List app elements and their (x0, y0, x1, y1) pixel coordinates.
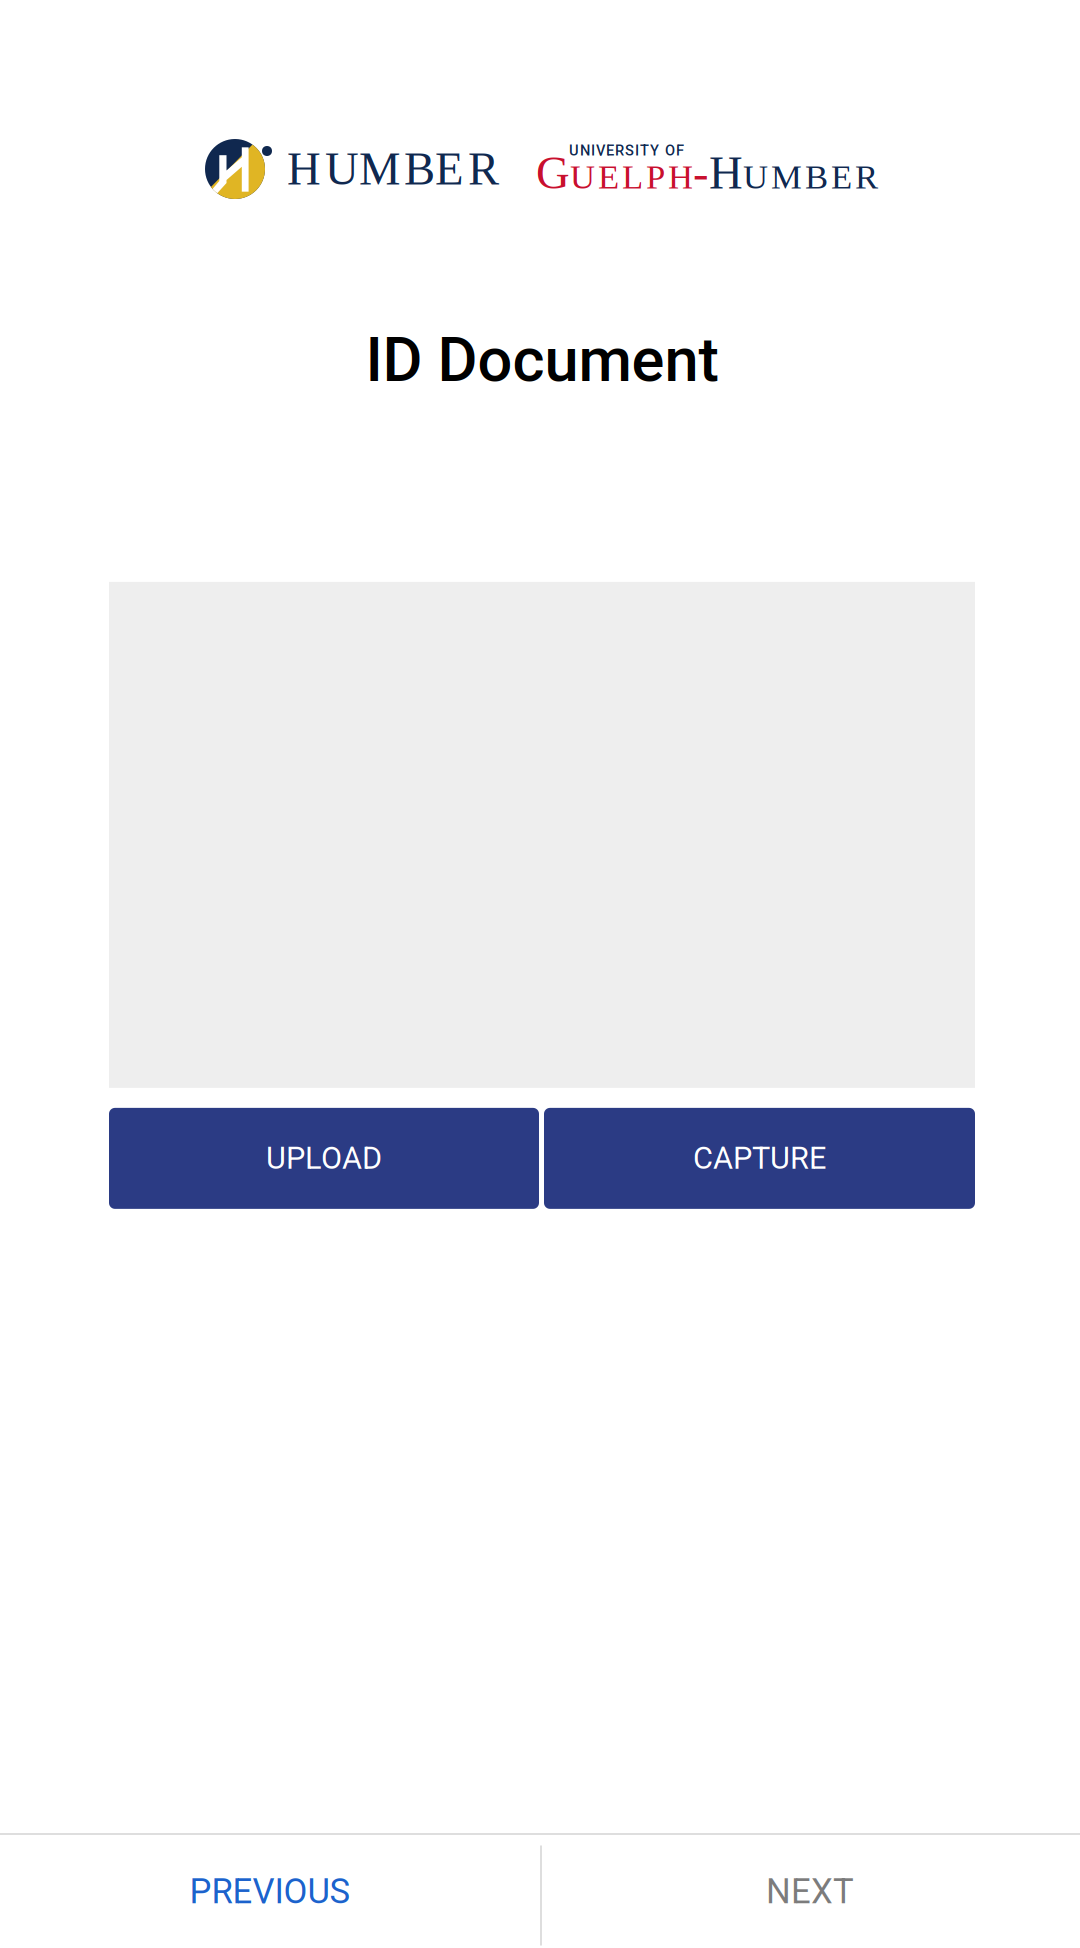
staticText: CAPTURE (693, 1141, 826, 1176)
button[interactable]: CAPTURE (544, 1108, 975, 1209)
staticText: - (693, 147, 709, 199)
staticText: UPLOAD (266, 1141, 382, 1176)
staticText: GU E L P H (536, 148, 693, 198)
staticText: HU M B E R (709, 148, 878, 198)
button[interactable]: NEXT (540, 1835, 1080, 1948)
button[interactable]: PREVIOUS (0, 1835, 540, 1948)
staticText: NEXT (766, 1872, 854, 1911)
staticText: U N I V E R S I T Y O F (569, 142, 684, 159)
button[interactable]: UPLOAD (109, 1108, 539, 1209)
staticText: PREVIOUS (189, 1872, 350, 1911)
staticText: ID Document (365, 324, 718, 396)
staticText: H U​M B​E R (287, 143, 499, 195)
